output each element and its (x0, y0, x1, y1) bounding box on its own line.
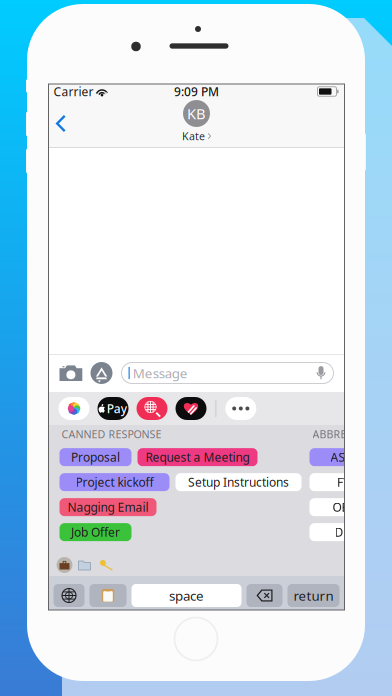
button[interactable]: Project kickoff (59, 473, 169, 491)
button[interactable]: Work category (55, 557, 73, 573)
staticText: Proposal (71, 449, 120, 465)
button[interactable]: FYI (309, 473, 381, 491)
button[interactable]: Setup Instructions (175, 473, 301, 491)
staticText: ABBREVIATIONS (312, 427, 392, 441)
staticText: space (169, 587, 204, 604)
button[interactable]: Digital Touch (175, 397, 206, 420)
button[interactable]: DUI (309, 523, 381, 541)
button[interactable]: Clipboard (89, 584, 126, 607)
staticText: Job Offer (71, 524, 120, 540)
button[interactable]: Proposal (59, 448, 131, 466)
staticText: Kate (182, 129, 205, 143)
staticText: Setup Instructions (188, 474, 289, 490)
button[interactable]: Nagging Email (59, 498, 156, 516)
button[interactable]: Job Offer (59, 523, 131, 541)
staticText: Request a Meeting (145, 449, 249, 465)
staticText: DUI (334, 524, 356, 540)
button[interactable]: Photos (58, 397, 89, 420)
staticText: Carrier (53, 83, 93, 99)
button[interactable]: Folders (73, 560, 95, 570)
button[interactable]: App Store (87, 357, 115, 389)
staticText: Nagging Email (67, 499, 148, 515)
staticText: Pay (107, 400, 127, 416)
staticText: return (293, 587, 333, 604)
button[interactable]: Keywords (95, 559, 117, 570)
staticText: FYI (337, 474, 354, 490)
button[interactable]: Apple Pay (97, 397, 128, 420)
button[interactable]: Camera (55, 357, 87, 389)
button[interactable]: space (131, 584, 241, 607)
button[interactable]: return (287, 584, 339, 607)
button[interactable]: #images (136, 397, 167, 420)
button[interactable]: ASAP (309, 448, 381, 466)
staticText: OBO (332, 499, 358, 515)
staticText: 9:09 PM (174, 83, 219, 99)
button[interactable]: More apps (225, 397, 256, 420)
staticText: KB (187, 104, 206, 123)
button[interactable]: Next keyboard (53, 584, 84, 607)
button[interactable]: Delete (246, 584, 282, 607)
staticText: Project kickoff (75, 474, 153, 490)
staticText: CANNED RESPONSE (61, 427, 161, 441)
button[interactable]: KB (182, 100, 211, 143)
button[interactable]: Back (48, 105, 77, 142)
staticText: Message (133, 364, 188, 382)
staticText: ASAP (330, 449, 360, 465)
button[interactable]: OBO (309, 498, 381, 516)
button[interactable]: Request a Meeting (137, 448, 257, 466)
